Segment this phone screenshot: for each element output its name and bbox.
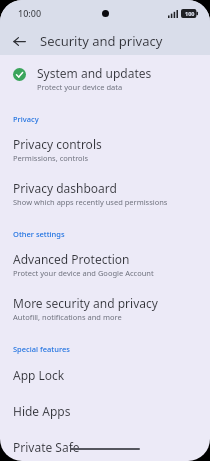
button[interactable]: Privacy controls (0, 124, 210, 163)
staticText: Autofill, notifications and more (13, 312, 122, 322)
staticText: 100 (185, 10, 195, 17)
staticText: App Lock (13, 367, 65, 383)
button[interactable]: Advanced Protection (0, 239, 210, 278)
staticText: Special features (13, 344, 70, 354)
staticText: Private Safe (13, 439, 80, 455)
button[interactable]: More security and privacy (0, 278, 210, 322)
button[interactable]: App Lock (0, 354, 210, 383)
button[interactable]: Back (6, 28, 32, 54)
button[interactable]: System and updates (0, 55, 210, 100)
staticText: Protect your device data (37, 82, 123, 92)
button[interactable]: Private Safe (0, 419, 210, 455)
staticText: More security and privacy (13, 295, 158, 311)
staticText: Protect your device and Google Account (13, 268, 154, 278)
staticText: Permissions, controls (13, 153, 89, 163)
staticText: Hide Apps (13, 403, 71, 419)
staticText: Security and privacy (40, 32, 163, 50)
staticText: Advanced Protection (13, 251, 130, 267)
staticText: 10:00 (18, 7, 42, 19)
staticText: Show which apps recently used permission… (13, 197, 168, 207)
staticText: Other settings (13, 229, 65, 239)
button[interactable]: Hide Apps (0, 383, 210, 419)
staticText: System and updates (37, 65, 152, 81)
staticText: Privacy (13, 114, 39, 124)
staticText: Privacy dashboard (13, 180, 117, 196)
button[interactable]: Privacy dashboard (0, 163, 210, 207)
staticText: Privacy controls (13, 136, 102, 152)
